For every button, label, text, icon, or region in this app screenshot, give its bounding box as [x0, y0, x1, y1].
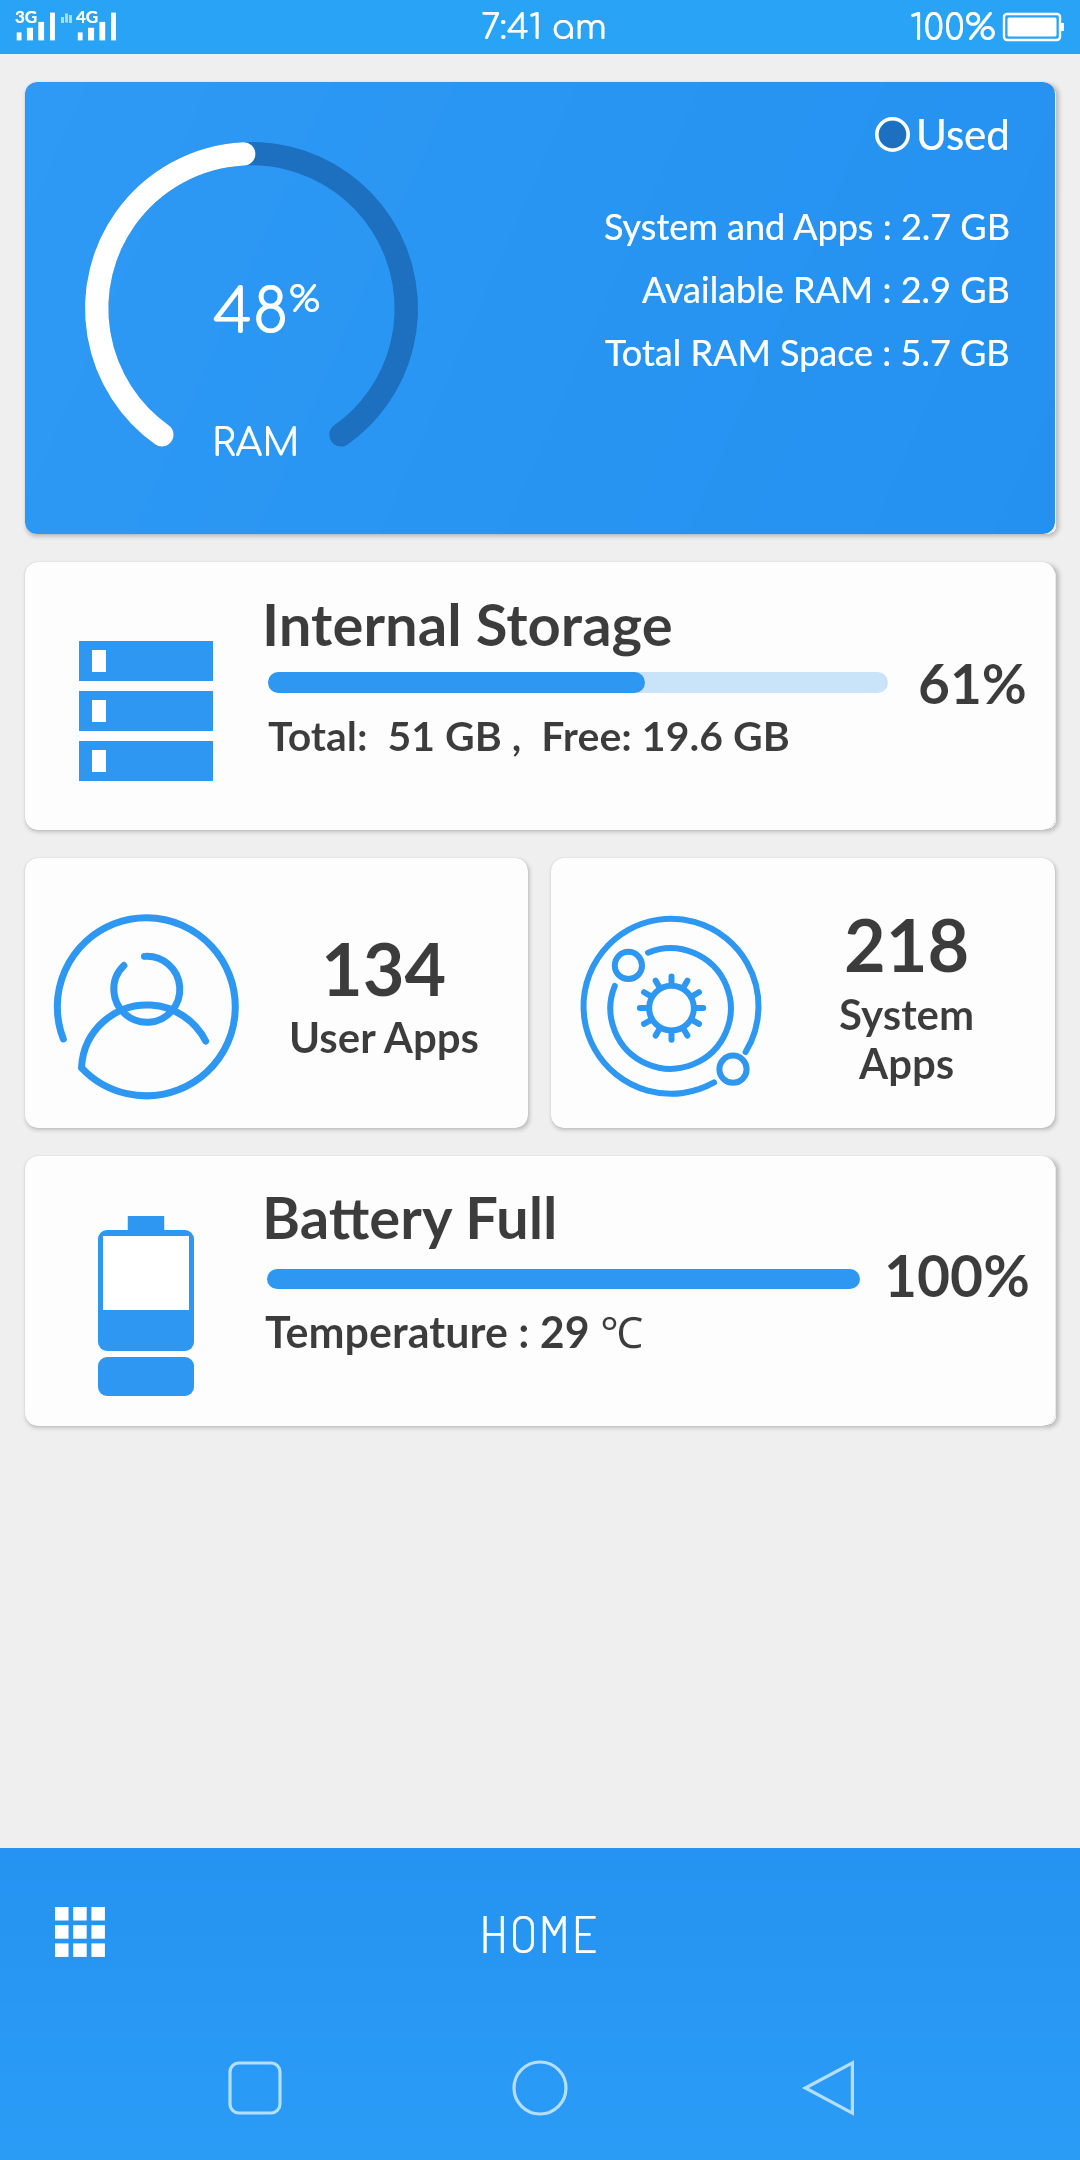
staticText: 218 — [844, 901, 970, 987]
staticText: % — [289, 280, 320, 320]
staticText: 134 — [321, 925, 447, 1011]
staticText: 100% — [884, 1241, 1030, 1309]
staticText: Total RAM Space : 5.7 GB — [605, 330, 1010, 373]
staticText: System — [839, 989, 975, 1039]
staticText: Apps — [859, 1038, 955, 1088]
staticText: System and Apps : 2.7 GB — [604, 204, 1010, 247]
button[interactable]: 134 — [25, 858, 528, 1128]
button[interactable]: HOME — [479, 1901, 600, 1963]
staticText: Available RAM : 2.9 GB — [642, 267, 1010, 310]
staticText: 48 — [213, 279, 289, 347]
staticText: Battery Full — [262, 1182, 558, 1252]
staticText: 100% — [910, 8, 996, 48]
button[interactable]: Battery Full — [25, 1156, 1055, 1426]
staticText: 3G — [15, 6, 38, 26]
button[interactable]: Back — [790, 2048, 870, 2128]
staticText: HOME — [479, 1901, 600, 1963]
staticText: 61% — [918, 650, 1027, 716]
staticText: Total: 51 GB , Free: 19.6 GB — [268, 711, 790, 760]
button[interactable]: Internal Storage — [25, 562, 1055, 830]
button[interactable]: Home — [500, 2048, 580, 2128]
button[interactable]: 48 — [25, 82, 1055, 534]
button[interactable]: Apps — [39, 1891, 121, 1973]
staticText: User Apps — [289, 1012, 480, 1062]
staticText: Used — [916, 109, 1010, 159]
button[interactable]: 218 — [551, 858, 1055, 1128]
staticText: Internal Storage — [262, 589, 673, 659]
staticText: Temperature : 29 ℃ — [265, 1302, 643, 1361]
staticText: RAM — [212, 423, 300, 465]
staticText: 7:41 am — [481, 9, 607, 47]
button[interactable]: Recents — [215, 2048, 295, 2128]
staticText: 4G — [76, 6, 99, 26]
